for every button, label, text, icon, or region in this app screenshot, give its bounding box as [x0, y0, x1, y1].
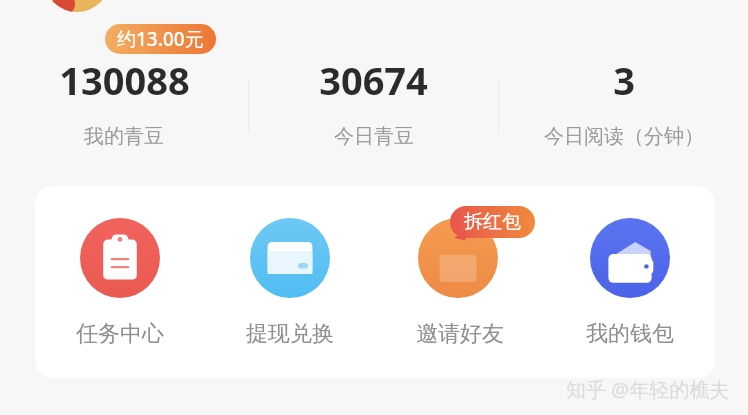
staticText: 我的青豆	[84, 124, 164, 149]
button[interactable]: 我的钱包	[545, 186, 715, 348]
staticText: 任务中心	[76, 320, 164, 348]
staticText: 3	[613, 54, 635, 106]
staticText: 约13.00元	[117, 26, 204, 52]
staticText: 邀请好友	[416, 320, 504, 348]
staticText: 我的钱包	[586, 320, 674, 348]
staticText: 知乎 @年轻的樵夫	[566, 376, 730, 403]
staticText: 提现兑换	[246, 320, 334, 348]
button[interactable]: 任务中心	[35, 186, 205, 348]
staticText: 30674	[319, 54, 428, 106]
button[interactable]: 30674	[249, 24, 498, 149]
staticText: 130088	[59, 54, 190, 106]
staticText: 拆红包	[464, 210, 521, 234]
staticText: 今日青豆	[334, 124, 414, 149]
button[interactable]: 约13.00元	[0, 24, 248, 149]
button[interactable]: 提现兑换	[205, 186, 375, 348]
staticText: 今日阅读（分钟）	[544, 124, 704, 149]
button[interactable]: 3	[499, 24, 748, 149]
button[interactable]: 邀请好友	[375, 186, 545, 348]
